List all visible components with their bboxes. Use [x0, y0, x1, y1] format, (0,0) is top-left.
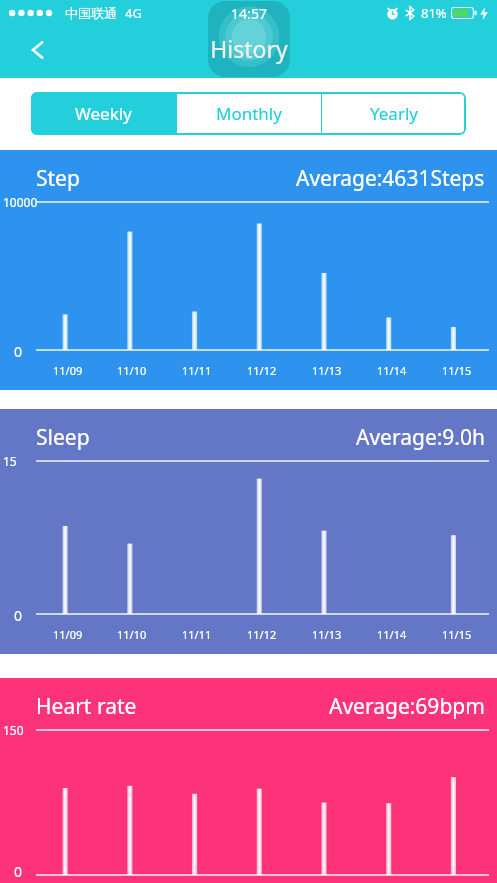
staticText: Sleep	[36, 423, 90, 452]
staticText: 11/09	[53, 363, 83, 378]
button[interactable]: Heart rate	[0, 678, 497, 883]
staticText: 150	[3, 722, 24, 738]
staticText: 11/11	[182, 627, 212, 642]
staticText: 11/13	[312, 363, 342, 378]
button[interactable]: Yearly	[322, 92, 466, 135]
staticText: 81%	[421, 4, 447, 22]
button[interactable]: Weekly	[31, 92, 176, 135]
staticText: Average:4631Steps	[296, 164, 485, 193]
staticText: 11/15	[442, 627, 472, 642]
staticText: 11/09	[53, 627, 83, 642]
staticText: 15	[3, 453, 17, 469]
staticText: 11/14	[377, 363, 407, 378]
staticText: 0	[14, 606, 23, 625]
staticText: 11/10	[117, 627, 147, 642]
button[interactable]: Monthly	[177, 92, 321, 135]
staticText: 11/12	[247, 627, 277, 642]
staticText: 11/10	[117, 363, 147, 378]
staticText: 11/14	[377, 627, 407, 642]
staticText: Average:69bpm	[329, 692, 485, 721]
staticText: Monthly	[216, 102, 282, 125]
staticText: Weekly	[75, 102, 132, 125]
staticText: Average:9.0h	[356, 423, 485, 452]
staticText: Step	[36, 164, 80, 193]
staticText: 14:57	[231, 4, 267, 23]
staticText: 11/15	[442, 363, 472, 378]
staticText: 11/13	[312, 627, 342, 642]
staticText: 10000	[3, 194, 38, 210]
button[interactable]: Step	[0, 150, 497, 390]
staticText: 0	[14, 862, 23, 881]
button[interactable]: Sleep	[0, 409, 497, 654]
staticText: 11/12	[247, 363, 277, 378]
staticText: History	[210, 33, 288, 64]
staticText: 11/11	[182, 363, 212, 378]
staticText: Yearly	[370, 102, 418, 125]
staticText: 0	[14, 342, 23, 361]
staticText: Heart rate	[36, 692, 137, 721]
button[interactable]: Back	[14, 28, 62, 72]
staticText: 4G	[125, 4, 142, 22]
staticText: 中国联通	[65, 5, 117, 21]
